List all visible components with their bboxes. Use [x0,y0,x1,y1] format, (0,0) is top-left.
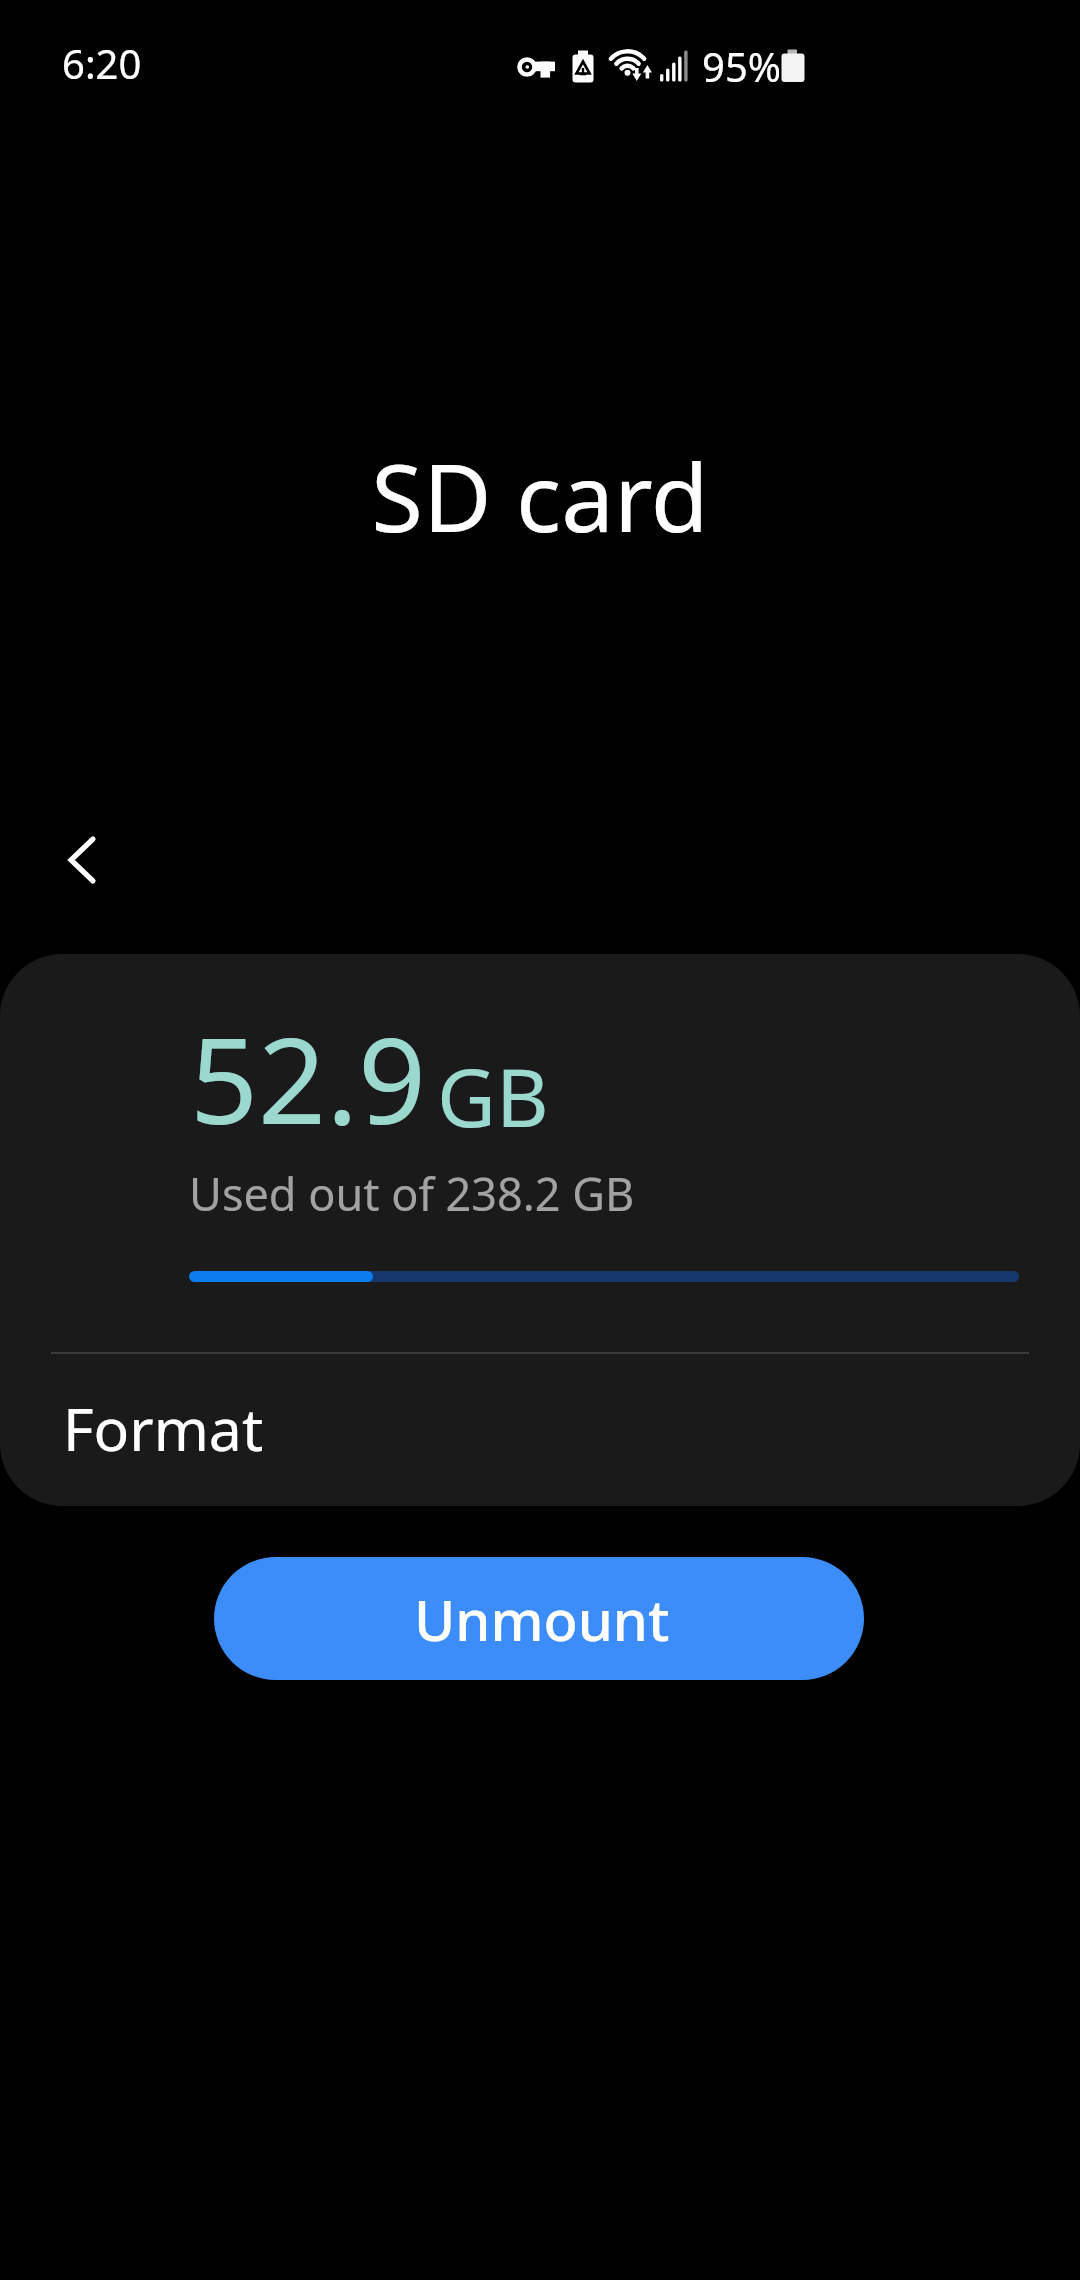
button[interactable]: Navigate up [38,816,126,904]
staticText: Unmount [414,1581,670,1657]
staticText: 95% [702,39,781,93]
staticText: 6:20 [62,36,142,90]
staticText: Used out of 238.2 GB [189,1163,635,1224]
staticText: Format [63,1388,264,1468]
staticText: GB [437,1040,549,1150]
staticText: SD card [0,432,1080,560]
button[interactable]: Format [0,1354,1080,1506]
staticText: 52.9 [190,997,427,1159]
button[interactable]: Unmount [214,1557,864,1680]
